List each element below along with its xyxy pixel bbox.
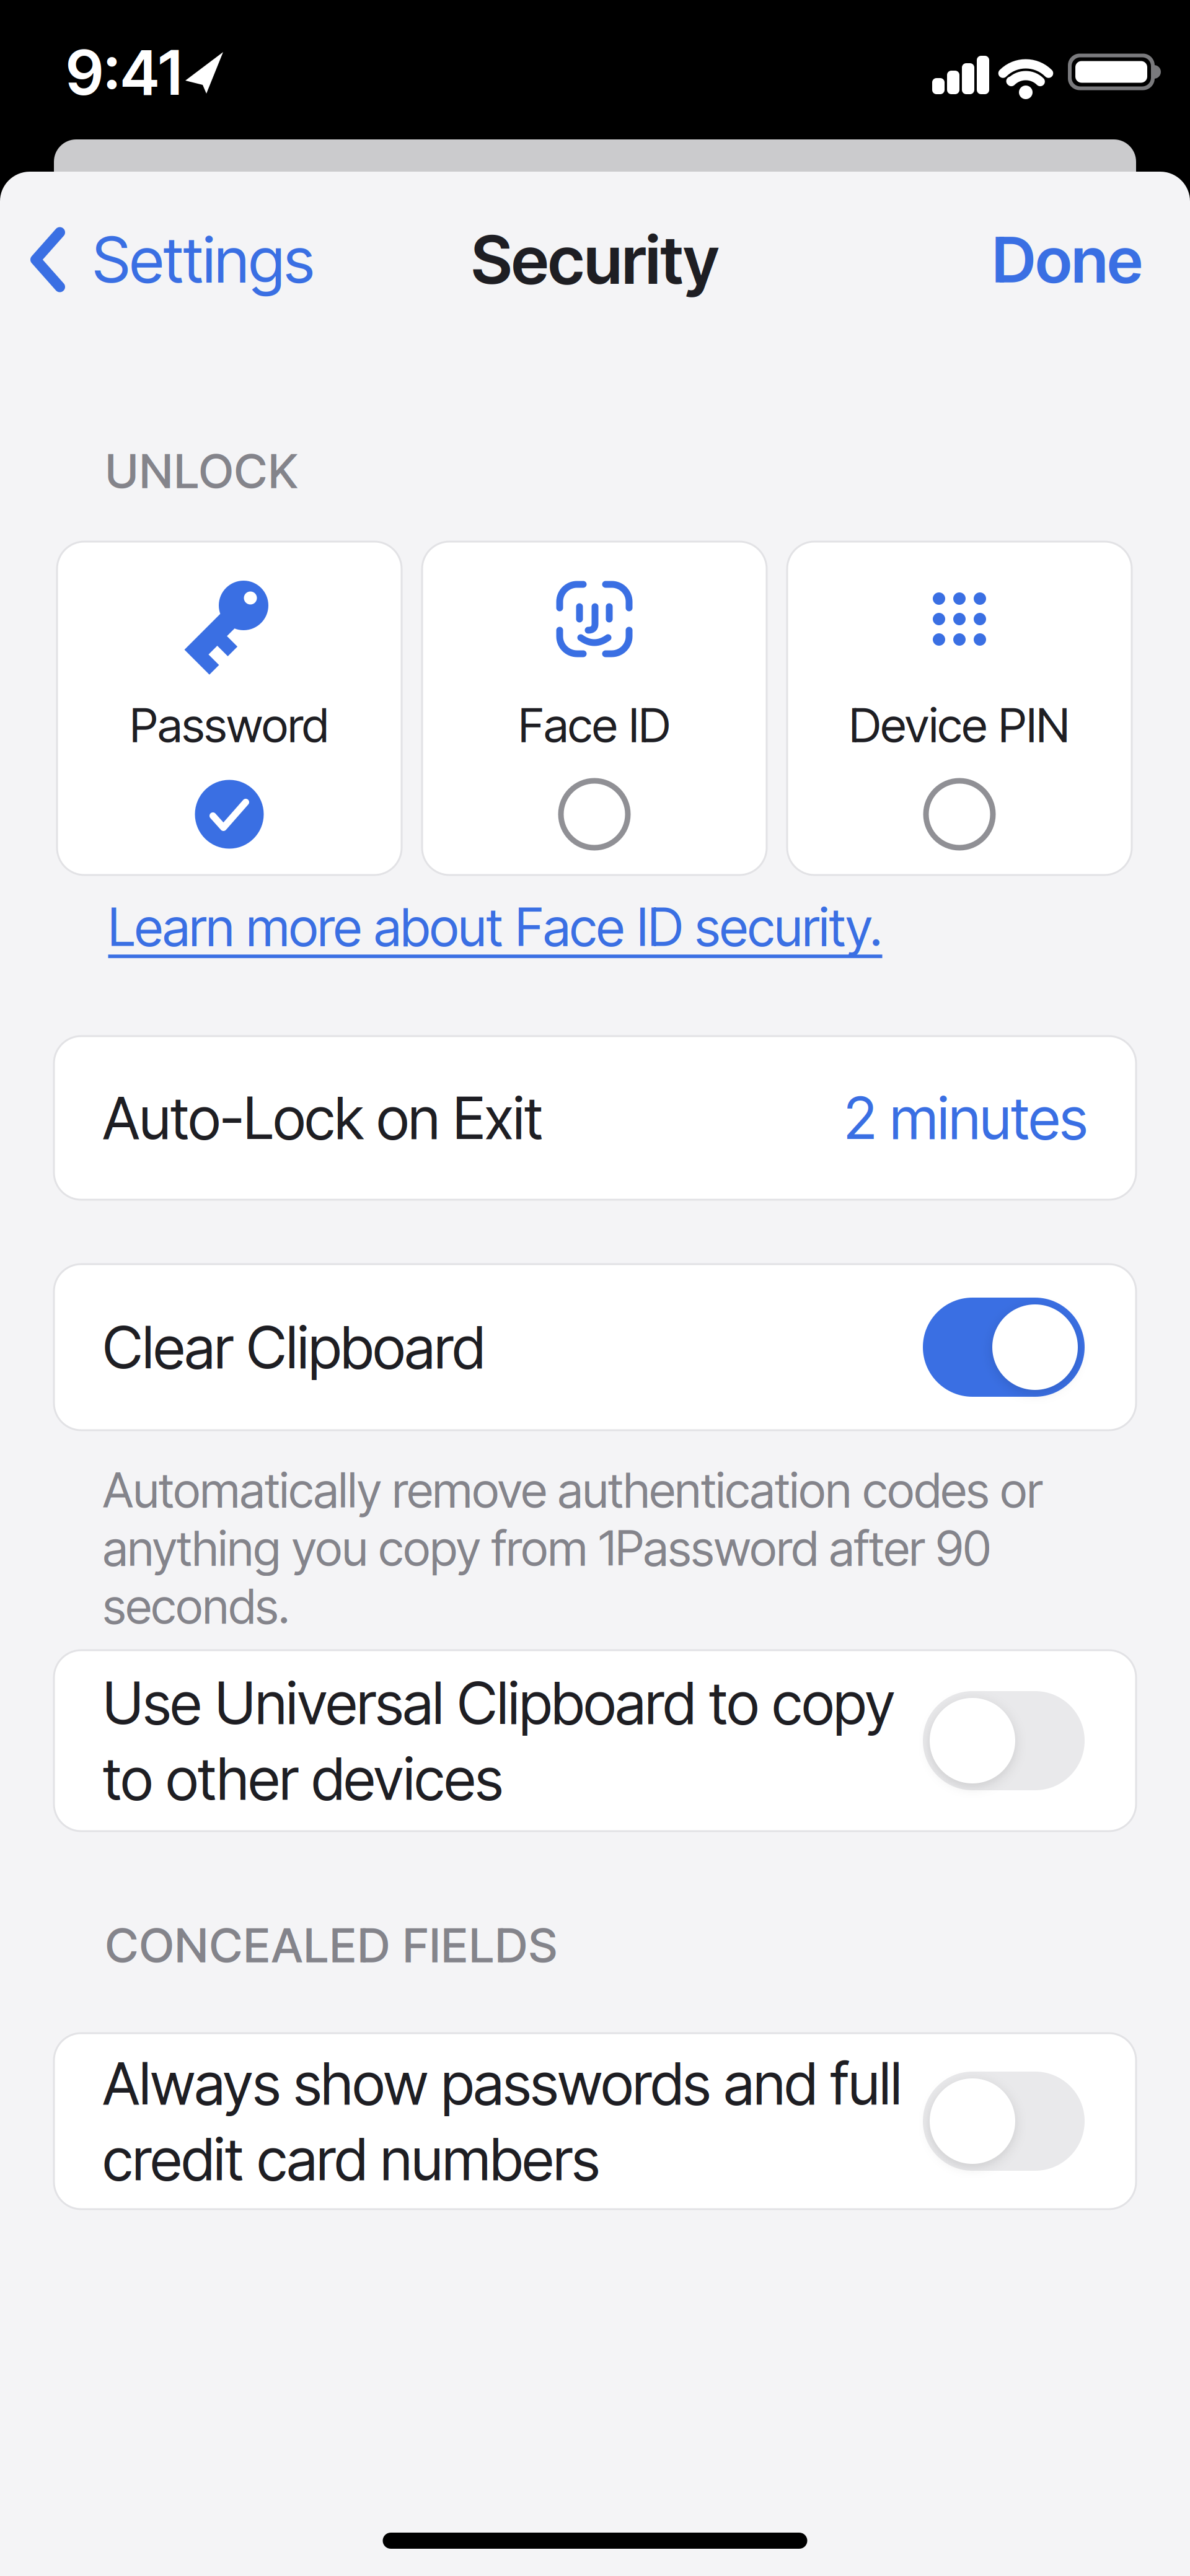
staticText: Settings	[93, 222, 314, 298]
staticText: Password	[130, 697, 329, 754]
staticText: Always show passwords and full	[103, 2048, 902, 2118]
staticText: 9:41	[66, 36, 182, 109]
staticText: Auto-Lock on Exit	[103, 1083, 543, 1153]
staticText: 2 minutes	[844, 1083, 1087, 1153]
staticText: Automatically remove authentication code…	[103, 1461, 1042, 1635]
staticText: Clear Clipboard	[103, 1312, 485, 1382]
button[interactable]: Device PIN	[787, 542, 1132, 875]
staticText: Use Universal Clipboard to copy	[103, 1668, 895, 1738]
button[interactable]: Done	[992, 222, 1142, 298]
button[interactable]: Face ID	[422, 542, 767, 875]
button[interactable]: Learn more about Face ID security.	[108, 896, 882, 959]
button[interactable]: Auto-Lock on Exit	[54, 1036, 1136, 1200]
staticText: CONCEALED FIELDS	[105, 1917, 557, 1974]
staticText: Face ID	[518, 697, 670, 754]
staticText: to other devices	[103, 1743, 503, 1813]
button[interactable]: Always show passwords and full credit ca…	[923, 2072, 1085, 2171]
button[interactable]: Password	[57, 542, 402, 875]
staticText: Device PIN	[849, 697, 1070, 754]
button[interactable]: Use Universal Clipboard to copy to other…	[923, 1691, 1085, 1790]
staticText: Security	[471, 220, 719, 300]
staticText: credit card numbers	[103, 2124, 599, 2194]
button[interactable]: Back to Settings	[31, 222, 314, 298]
button[interactable]: Clear Clipboard	[923, 1298, 1085, 1397]
staticText: Done	[992, 222, 1142, 298]
staticText: Learn more about Face ID security.	[108, 896, 882, 959]
staticText: UNLOCK	[105, 442, 297, 499]
